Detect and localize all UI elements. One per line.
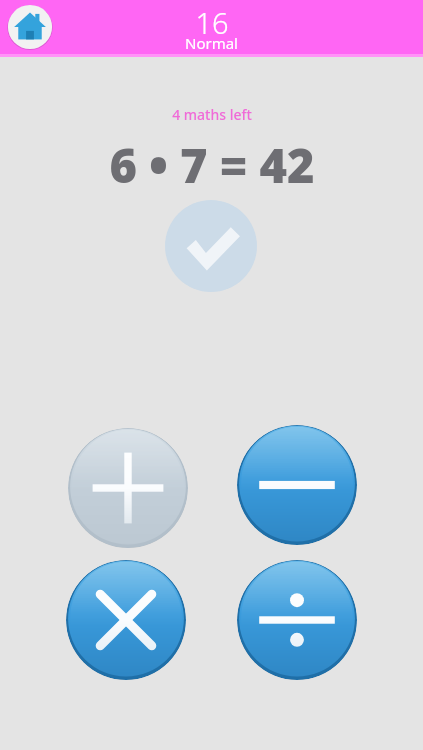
staticText: Normal	[185, 33, 238, 53]
staticText: 6 • 7 = 42	[109, 133, 315, 191]
button[interactable]: Home	[7, 4, 53, 50]
button[interactable]: Plus	[68, 428, 188, 548]
button[interactable]: Multiply	[66, 560, 186, 680]
button[interactable]: Divide	[237, 560, 357, 680]
staticText: 4 maths left	[172, 105, 252, 124]
button[interactable]: Minus	[237, 425, 357, 545]
staticText: 16	[195, 3, 229, 35]
